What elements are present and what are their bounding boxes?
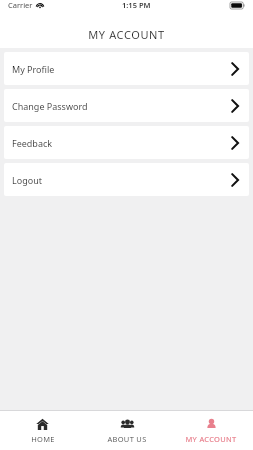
button[interactable]: MY ACCOUNT — [169, 411, 253, 450]
button[interactable]: ABOUT US — [85, 411, 169, 450]
staticText: Change Password — [12, 100, 88, 112]
button[interactable]: Change Password — [4, 89, 249, 122]
staticText: My Profile — [12, 63, 55, 75]
button[interactable]: My Profile — [4, 52, 249, 85]
staticText: Feedback — [12, 137, 53, 149]
staticText: 1:15 PM — [122, 0, 151, 10]
button[interactable]: HOME — [0, 411, 85, 450]
staticText: ABOUT US — [107, 434, 147, 444]
staticText: Logout — [12, 174, 42, 186]
staticText: MY ACCOUNT — [88, 27, 165, 42]
staticText: Carrier — [8, 0, 33, 10]
button[interactable]: Logout — [4, 163, 249, 196]
staticText: MY ACCOUNT — [185, 434, 237, 444]
button[interactable]: Feedback — [4, 126, 249, 159]
staticText: HOME — [31, 434, 55, 444]
